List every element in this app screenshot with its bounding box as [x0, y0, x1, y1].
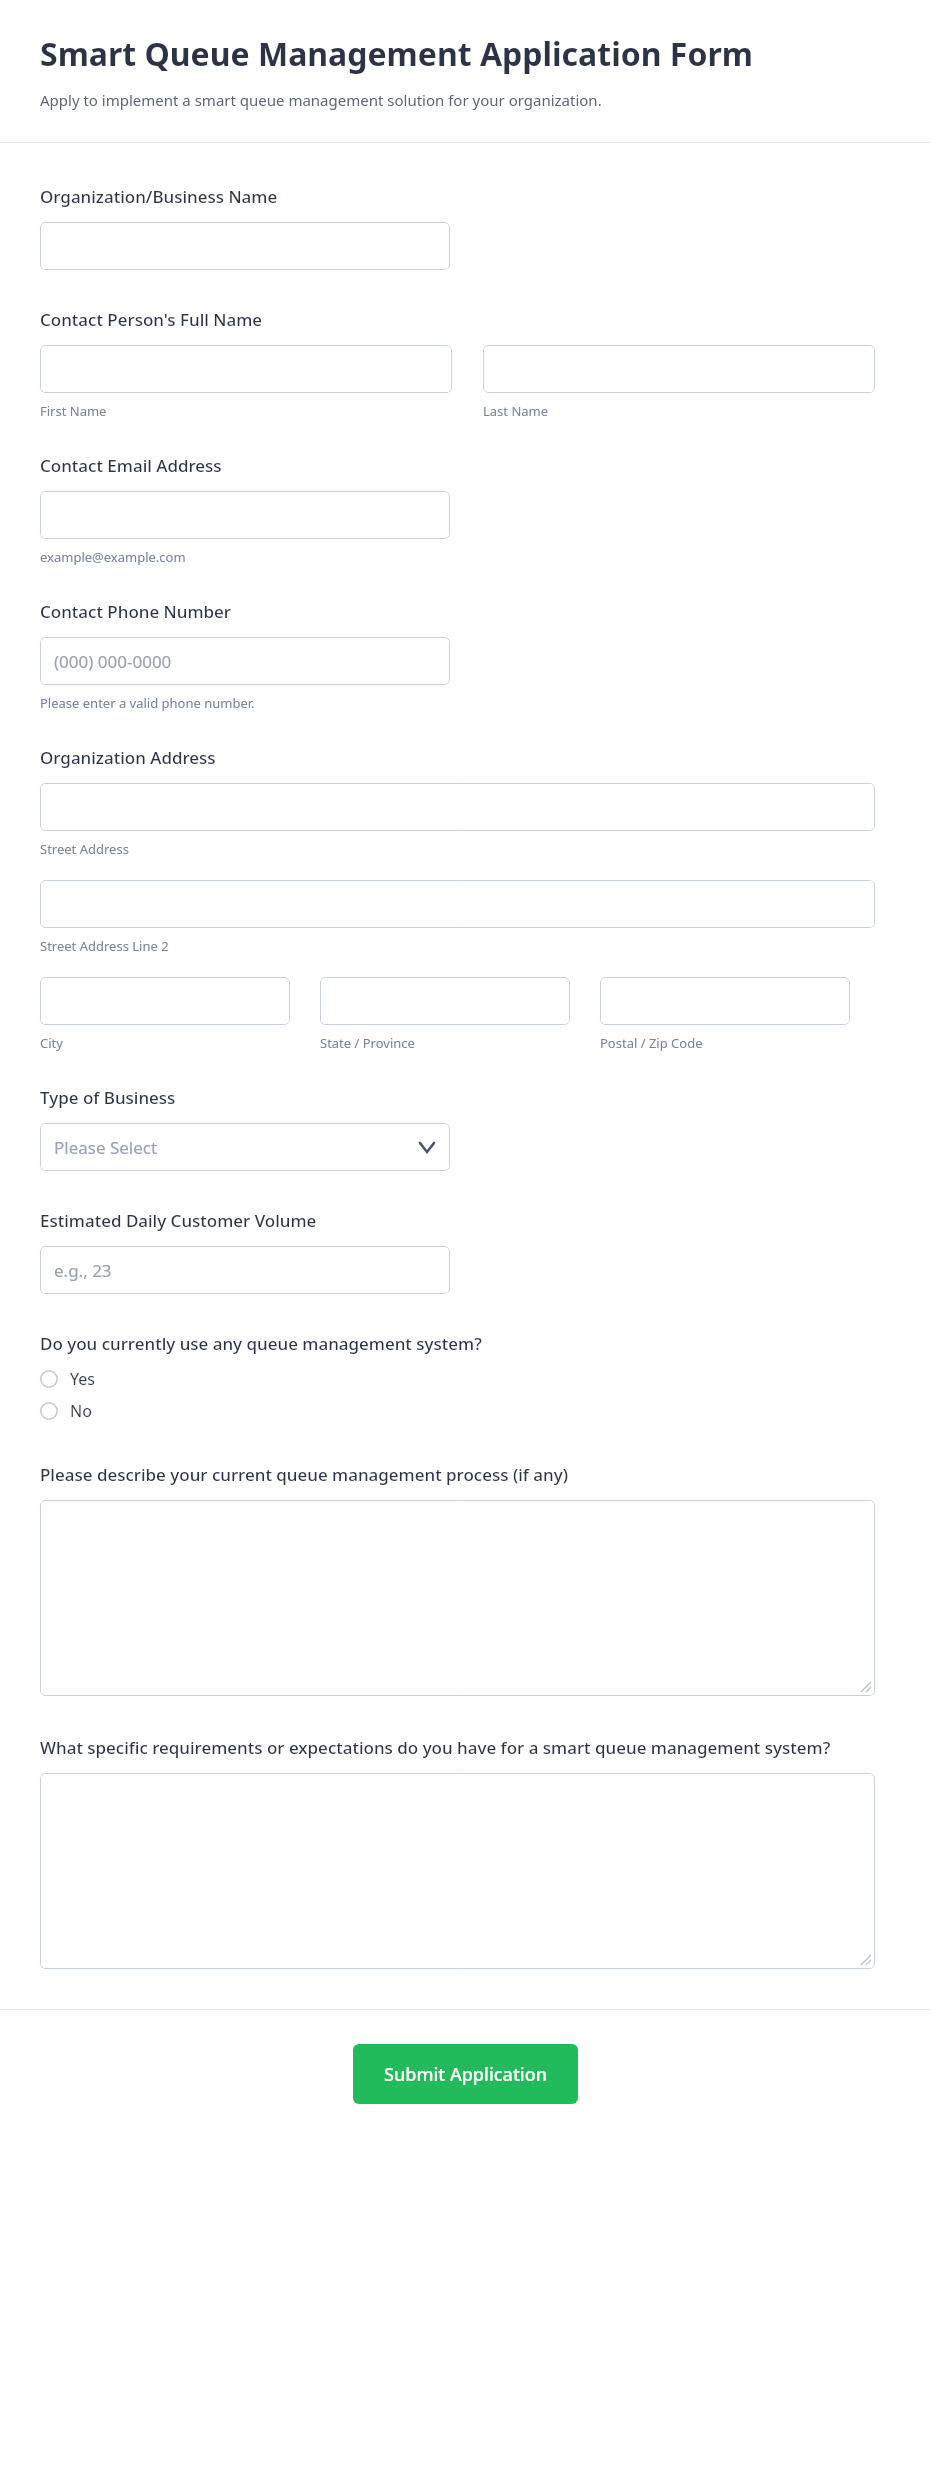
button[interactable] [40, 345, 452, 393]
staticText: City [40, 1034, 63, 1052]
staticText: Do you currently use any queue managemen… [40, 1332, 482, 1355]
staticText: Street Address [40, 840, 129, 858]
staticText: Please Select [54, 1136, 158, 1159]
staticText: Type of Business [40, 1086, 176, 1109]
button[interactable]: e.g., 23 [40, 1246, 450, 1294]
staticText: Yes [70, 1368, 95, 1390]
staticText: No [70, 1400, 92, 1422]
staticText: Contact Person's Full Name [40, 308, 263, 331]
button[interactable] [40, 977, 290, 1025]
button[interactable] [600, 977, 850, 1025]
staticText: Organization Address [40, 746, 216, 769]
button[interactable] [320, 977, 570, 1025]
staticText: Please enter a valid phone number. [40, 694, 255, 712]
staticText: Smart Queue Management Application Form [40, 32, 753, 76]
staticText: Submit Application [384, 2062, 547, 2087]
button[interactable] [40, 222, 450, 270]
staticText: Estimated Daily Customer Volume [40, 1209, 317, 1232]
button[interactable] [40, 783, 875, 831]
button[interactable]: Submit Application [353, 2044, 578, 2104]
button[interactable]: No [40, 1397, 900, 1425]
button[interactable] [40, 880, 875, 928]
staticText: Contact Phone Number [40, 600, 232, 623]
button[interactable]: Please Select [40, 1123, 450, 1171]
staticText: example@example.com [40, 548, 186, 566]
button[interactable] [483, 345, 875, 393]
staticText: Please describe your current queue manag… [40, 1463, 568, 1486]
staticText: Apply to implement a smart queue managem… [40, 90, 602, 110]
button[interactable]: Yes [40, 1365, 900, 1393]
staticText: Last Name [483, 402, 549, 420]
staticText: What specific requirements or expectatio… [40, 1736, 831, 1759]
staticText: Postal / Zip Code [600, 1034, 703, 1052]
staticText: State / Province [320, 1034, 415, 1052]
staticText: Street Address Line 2 [40, 937, 169, 955]
staticText: First Name [40, 402, 107, 420]
staticText: Organization/Business Name [40, 185, 278, 208]
button[interactable] [40, 1500, 875, 1696]
button[interactable] [40, 491, 450, 539]
staticText: (000) 000-0000 [54, 650, 172, 673]
button[interactable] [40, 1773, 875, 1969]
staticText: e.g., 23 [54, 1259, 112, 1282]
button[interactable]: (000) 000-0000 [40, 637, 450, 685]
staticText: Contact Email Address [40, 454, 222, 477]
